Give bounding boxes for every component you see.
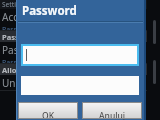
staticText: Unlock [2,76,35,90]
staticText: Password [2,32,38,42]
staticText: Allow [2,65,23,75]
button[interactable]: Account [0,9,160,30]
staticText: Password [2,58,34,63]
button[interactable]: Unlock [0,75,160,90]
button[interactable]: Anuluj [82,102,142,119]
staticText: Account [2,10,41,24]
staticText: Password [2,25,34,30]
staticText: Anuluj [99,110,126,120]
staticText: OK [42,110,55,120]
staticText: Password [22,3,77,19]
button[interactable]: Password [0,42,160,63]
button[interactable] [23,46,137,64]
staticText: Password [2,43,48,57]
button[interactable]: OK [18,102,78,119]
staticText: Settings [2,0,28,9]
